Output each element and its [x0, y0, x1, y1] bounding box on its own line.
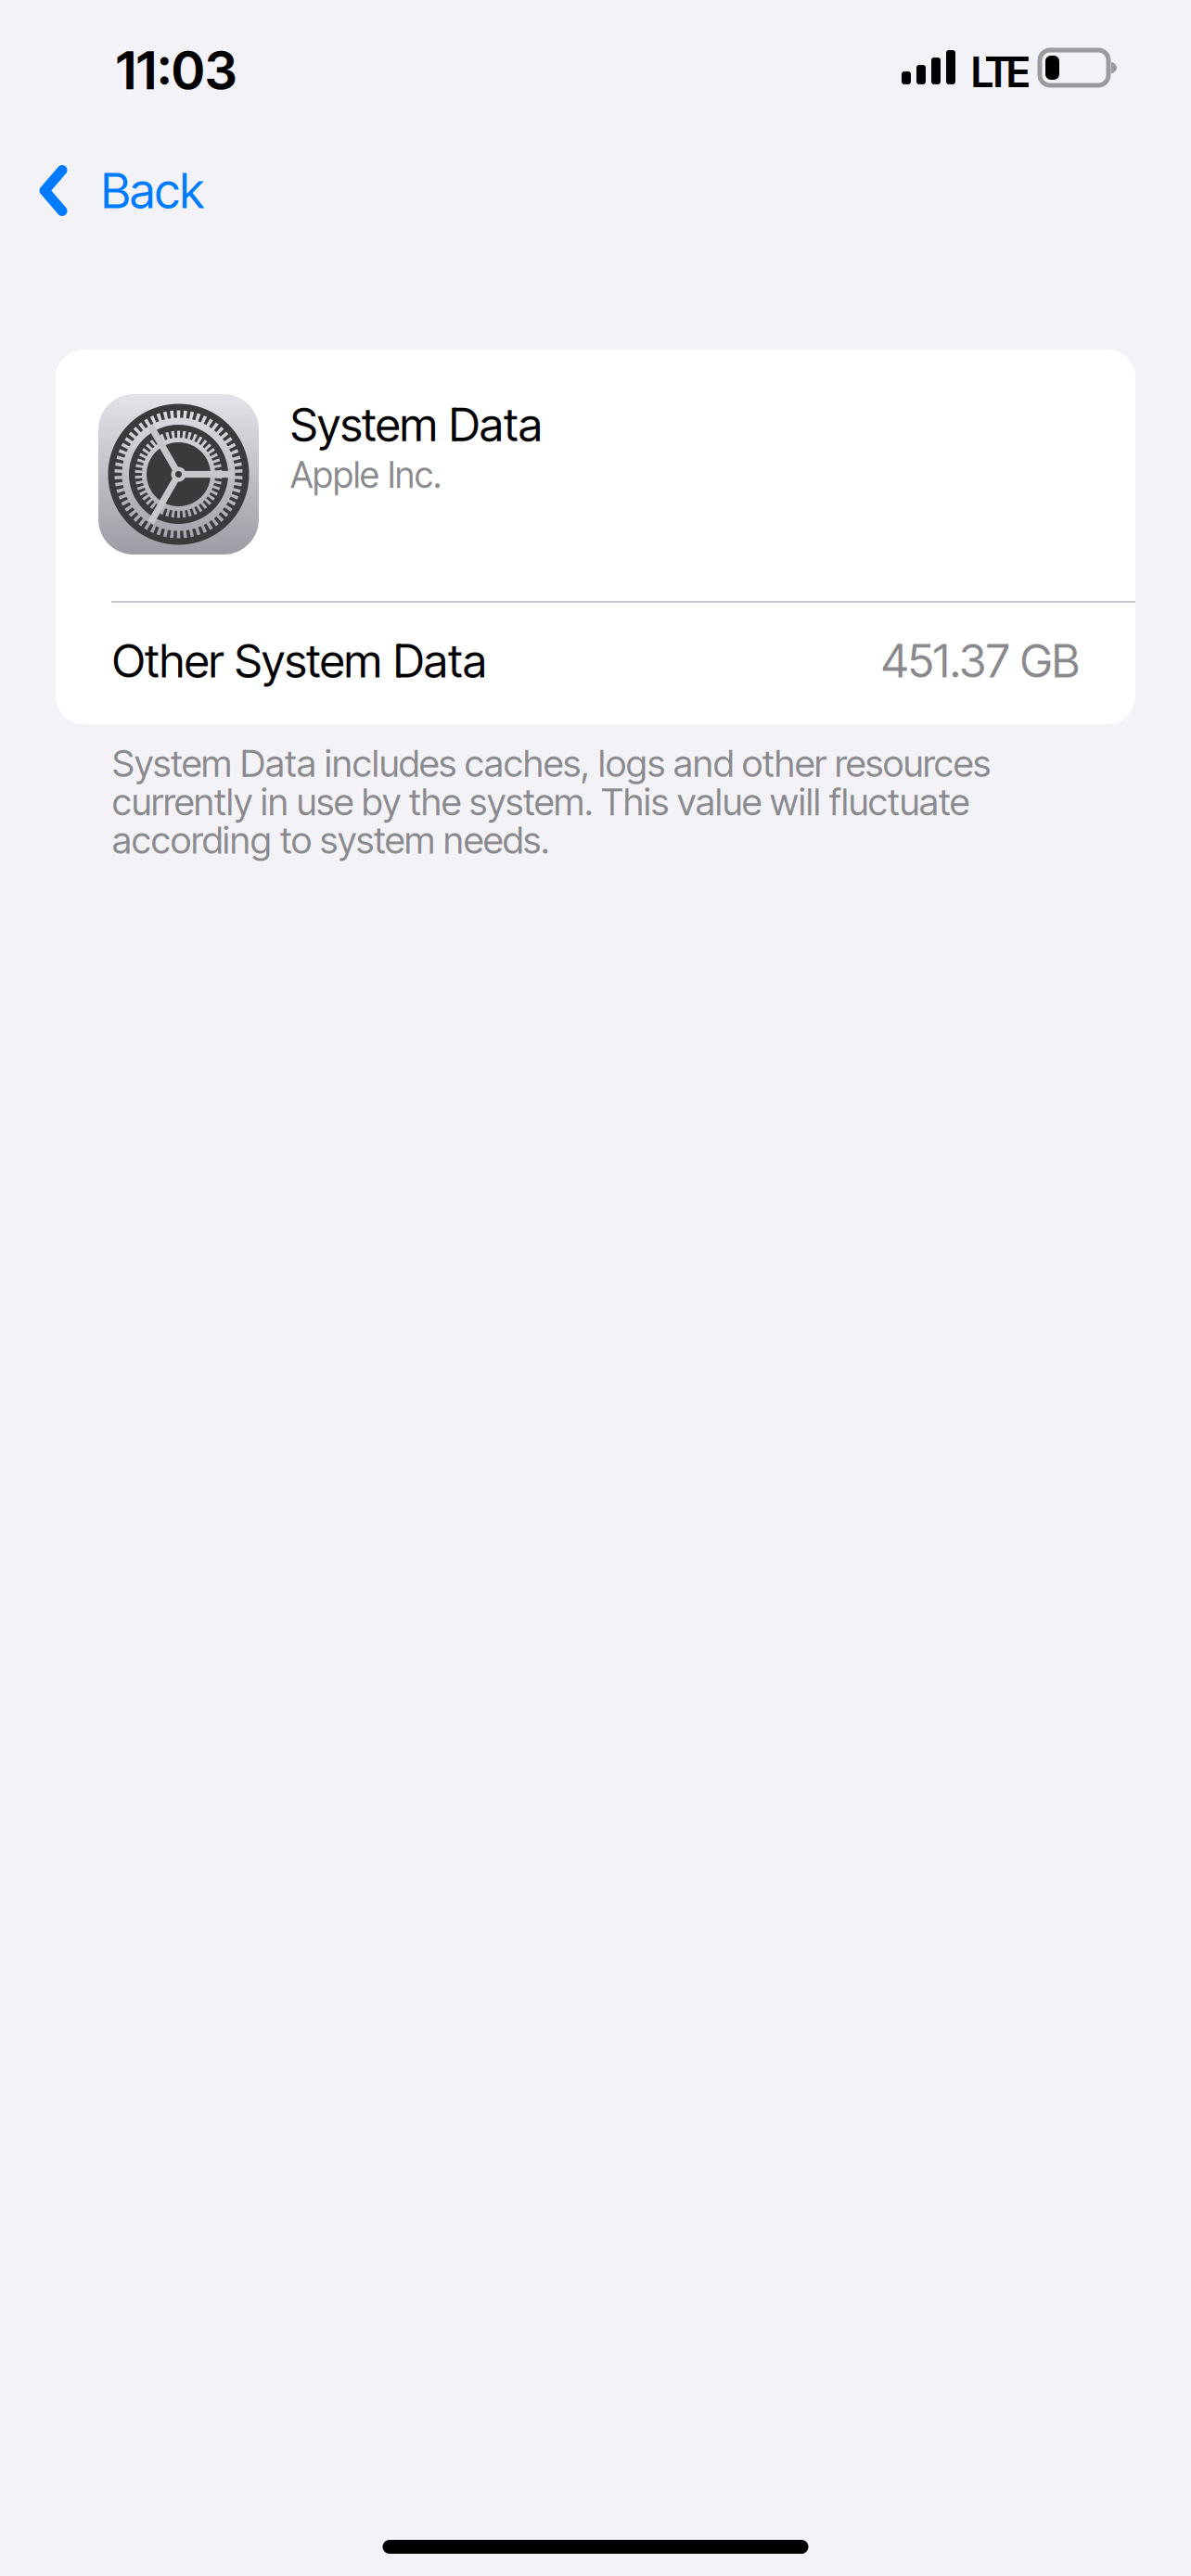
staticText: Back [101, 161, 204, 220]
staticText: 451.37 GB [881, 633, 1080, 688]
staticText: System Data includes caches, logs and ot… [112, 741, 991, 863]
button[interactable]: Back [0, 139, 237, 250]
staticText: System Data [290, 397, 543, 452]
staticText: Apple Inc. [290, 453, 442, 497]
staticText: Other System Data [112, 633, 487, 688]
staticText: LTE [971, 46, 1031, 97]
button[interactable]: System Data [0, 250, 1191, 724]
staticText: 11:03 [116, 39, 237, 102]
